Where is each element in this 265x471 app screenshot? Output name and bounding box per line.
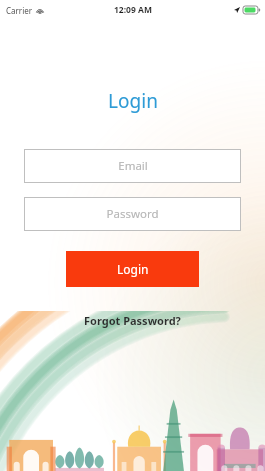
button[interactable]: Forgot Password? [74,309,191,332]
button[interactable]: Email [24,149,241,183]
button[interactable]: Login [66,251,199,287]
staticText: Login [108,88,158,114]
staticText: Login [117,261,149,277]
staticText: 12:09 AM [114,4,152,16]
staticText: Carrier [6,5,33,16]
staticText: Password [106,206,159,222]
staticText: Forgot Password? [84,313,181,328]
button[interactable]: Password [24,197,241,231]
staticText: Email [118,158,148,174]
